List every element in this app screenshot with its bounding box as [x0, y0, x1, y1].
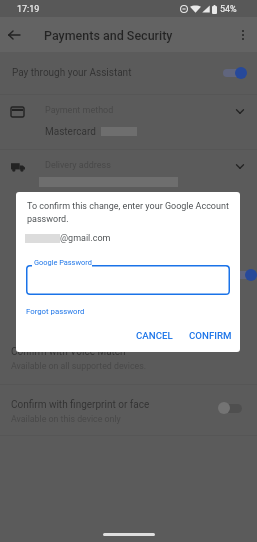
- staticText: Confirm with fingerprint or face: [11, 399, 150, 411]
- button[interactable]: Forgot password: [26, 307, 85, 316]
- staticText: Available on all supported devices.: [11, 361, 147, 371]
- button[interactable]: Toggle on: [232, 268, 257, 282]
- staticText: CONFIRM: [189, 330, 232, 341]
- staticText: Confirm with Voice Match: [11, 346, 126, 358]
- staticText: Delivery address: [45, 160, 111, 171]
- button[interactable]: Toggle on: [222, 66, 248, 80]
- staticText: CANCEL: [136, 330, 173, 341]
- button[interactable]: More options: [233, 25, 253, 45]
- staticText: Payment method: [45, 105, 114, 116]
- staticText: Google Password: [34, 258, 92, 267]
- button[interactable]: CANCEL: [128, 325, 181, 346]
- staticText: 17:19: [17, 4, 40, 15]
- staticText: Payments and Security: [44, 28, 173, 43]
- button[interactable]: Toggle off: [218, 401, 244, 415]
- staticText: To confirm this change, enter your Googl…: [27, 201, 229, 224]
- staticText: Mastercard: [45, 126, 96, 138]
- button[interactable]: Google Password: [26, 265, 230, 295]
- button[interactable]: CONFIRM: [181, 325, 240, 346]
- staticText: Available on this device only: [11, 414, 121, 424]
- staticText: 54%: [220, 4, 237, 15]
- staticText: @gmail.com: [60, 233, 111, 244]
- button[interactable]: Back: [4, 25, 24, 45]
- staticText: Pay through your Assistant: [12, 67, 132, 79]
